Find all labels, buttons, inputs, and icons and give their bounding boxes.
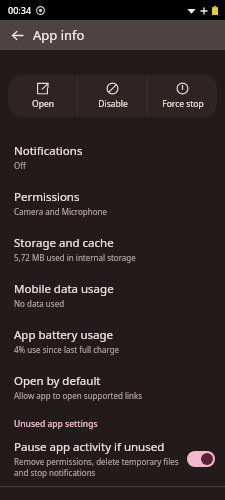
button[interactable]: Open by default [0,364,225,410]
staticText: Force stop [162,98,204,110]
button[interactable]: Mobile data usage [0,272,225,318]
staticText: Disable [98,98,128,110]
staticText: Allow app to open supported links [14,390,143,401]
button[interactable]: Disable [78,75,147,117]
staticText: Notifications [14,143,83,159]
staticText: Remove permissions, delete temporary fil… [14,456,181,478]
staticText: No data used [14,298,65,309]
staticText: Unused app settings [14,418,98,430]
button[interactable]: Back [6,24,28,46]
staticText: Open [32,98,54,110]
button[interactable]: Open [8,75,77,117]
button[interactable]: App battery usage [0,318,225,364]
staticText: Storage and cache [14,235,114,251]
staticText: 4% use since last full charge [14,344,120,355]
staticText: Camera and Microphone [14,206,107,217]
staticText: App info [33,26,85,44]
button[interactable]: Storage and cache [0,226,225,272]
staticText: Mobile data usage [14,281,114,297]
button[interactable]: Force stop [148,75,217,117]
staticText: App battery usage [14,327,114,343]
staticText: Pause app activity if unused [14,439,165,455]
button[interactable]: Pause app activity if unused toggle [187,451,215,467]
button[interactable]: Notifications [0,134,225,180]
staticText: 00:34 [8,4,32,16]
staticText: Permissions [14,189,80,205]
staticText: 5,72 MB used in internal storage [14,252,136,263]
button[interactable]: Permissions [0,180,225,226]
staticText: Off [14,160,26,171]
button[interactable]: Pause app activity if unused [0,433,225,486]
staticText: Open by default [14,373,101,389]
